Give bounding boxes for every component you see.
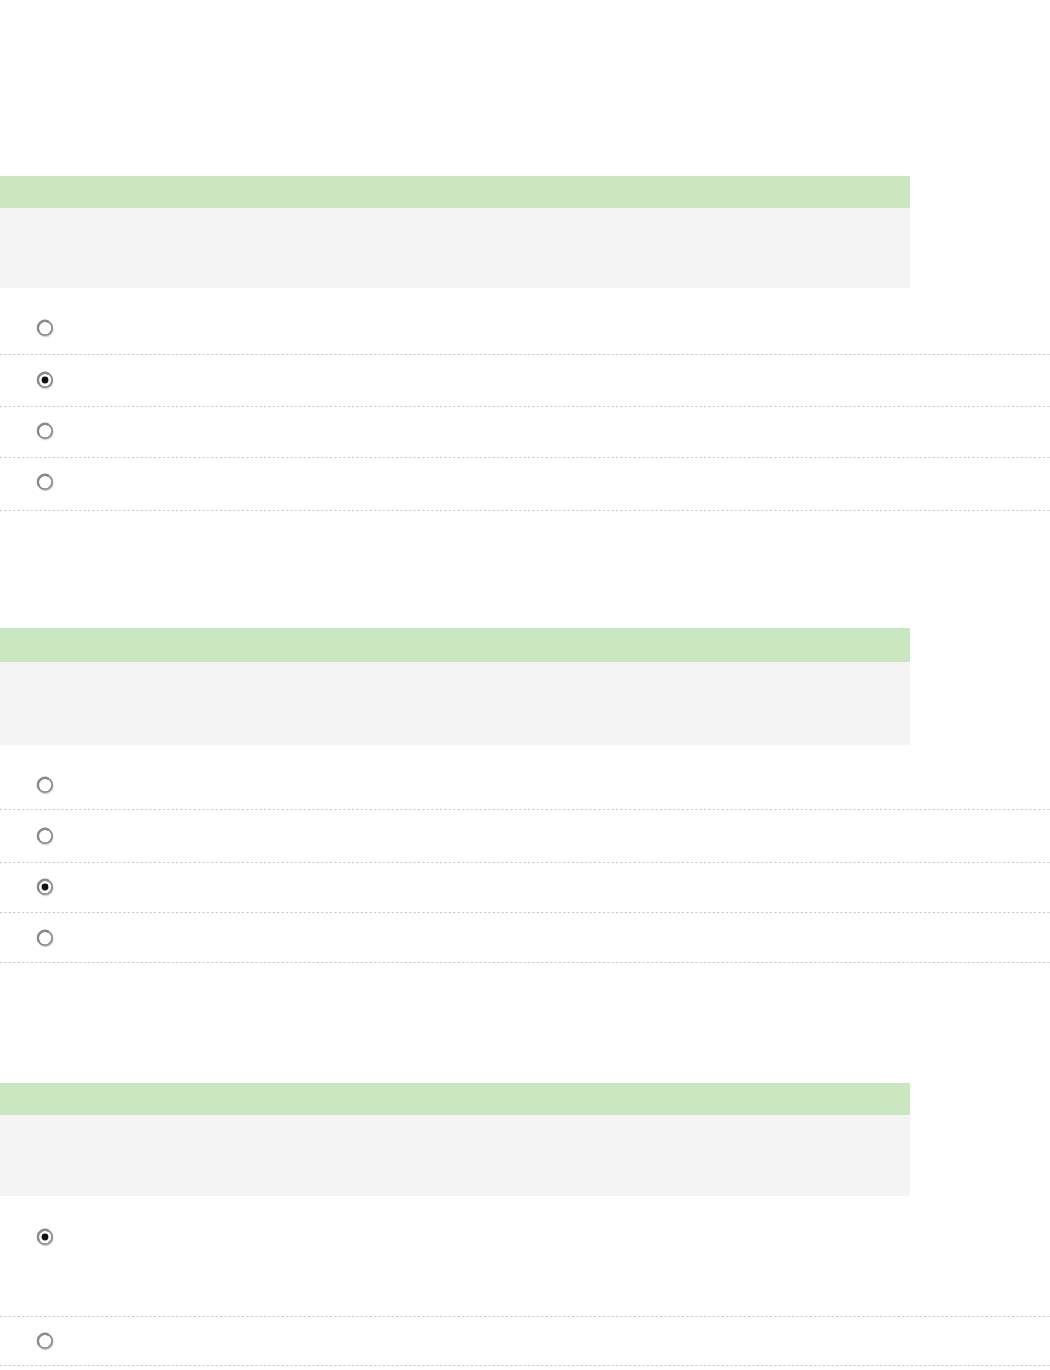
button[interactable]: Option 3 [0, 863, 1050, 913]
button[interactable]: Option 2 [0, 1317, 1050, 1366]
button[interactable]: Option 4 [0, 913, 1050, 963]
button[interactable]: Option 4 [0, 458, 1050, 511]
button[interactable]: Option 2 [0, 810, 1050, 863]
button[interactable]: Option 3 [0, 407, 1050, 458]
button[interactable]: Option 1 [0, 1217, 1050, 1317]
button[interactable]: Option 1 [0, 760, 1050, 810]
button[interactable]: Option 1 [0, 302, 1050, 355]
button[interactable]: Option 2 [0, 355, 1050, 407]
